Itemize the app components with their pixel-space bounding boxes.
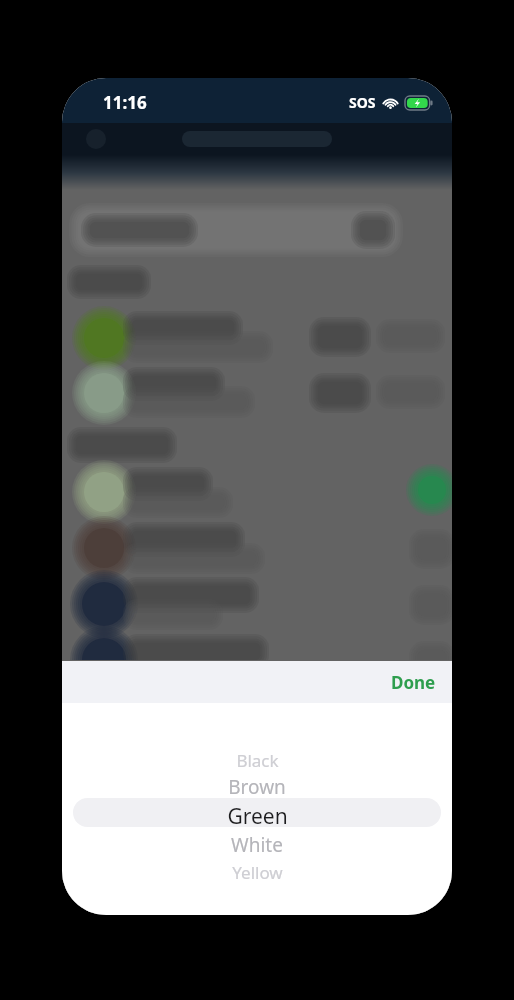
staticText: 11:16 <box>103 91 147 114</box>
staticText: Green <box>227 802 288 831</box>
staticText: Done <box>391 671 436 694</box>
staticText: Yellow <box>232 861 283 884</box>
staticText: Black <box>236 749 279 772</box>
button[interactable]: Green <box>62 801 452 831</box>
button[interactable]: Black <box>62 747 452 773</box>
button[interactable]: Brown <box>62 773 452 801</box>
staticText: SOS <box>349 93 376 112</box>
staticText: White <box>231 832 283 858</box>
button[interactable]: Yellow <box>62 859 452 885</box>
staticText: Brown <box>228 774 286 800</box>
button[interactable]: White <box>62 831 452 859</box>
button[interactable]: Done <box>375 663 452 702</box>
